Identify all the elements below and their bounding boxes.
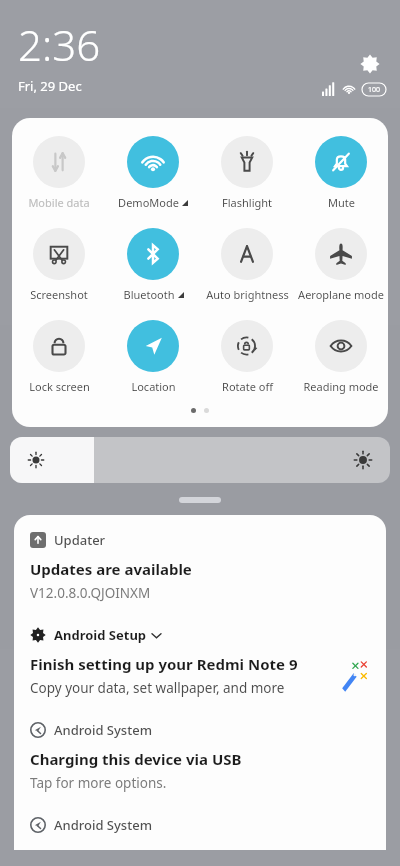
staticText: DemoMode [118,195,179,210]
button[interactable]: Android System [30,816,372,834]
button[interactable]: Screenshot [12,226,106,304]
staticText: Rotate off [222,379,273,394]
staticText: Charging this device via USB [30,749,242,769]
button[interactable]: Updater [30,531,372,549]
staticText: Updater [54,531,106,549]
staticText: Finish setting up your Redmi Note 9 [30,654,298,674]
staticText: Android System [54,816,152,834]
button[interactable]: Location [106,318,200,396]
staticText: Android Setup [54,626,147,644]
staticText: Aeroplane mode [298,287,384,302]
staticText: Updates are available [30,559,192,579]
button[interactable]: Lock screen [12,318,106,396]
staticText: Tap for more options. [30,774,167,792]
staticText: V12.0.8.0.QJOINXM [30,584,151,602]
button[interactable]: Brightness [10,437,390,483]
button[interactable]: Aeroplane mode [294,226,388,304]
staticText: Mute [328,195,355,210]
button[interactable]: Rotate off [200,318,294,396]
button[interactable]: Auto brightness [200,226,294,304]
staticText: 2:36 [18,16,101,73]
staticText: Fri, 29 Dec [18,77,82,95]
button[interactable]: Android Setup [30,626,372,644]
staticText: Screenshot [30,287,88,302]
staticText: Copy your data, set wallpaper, and more [30,679,285,697]
button[interactable]: Flashlight [200,134,294,212]
button[interactable]: Mute [294,134,388,212]
button[interactable]: Bluetooth [106,226,200,304]
button[interactable]: Android System [30,721,372,739]
staticText: Location [131,379,176,394]
staticText: Android System [54,721,152,739]
staticText: Flashlight [222,195,272,210]
button[interactable]: DemoMode [106,134,200,212]
staticText: 100 [368,85,381,95]
button[interactable]: Settings [354,48,386,80]
staticText: Reading mode [303,379,379,394]
button[interactable]: Mobile data [12,134,106,212]
staticText: Lock screen [29,379,90,394]
staticText: Auto brightness [206,287,289,302]
staticText: Bluetooth [123,287,175,302]
button[interactable]: Reading mode [294,318,388,396]
staticText: Mobile data [28,195,90,210]
